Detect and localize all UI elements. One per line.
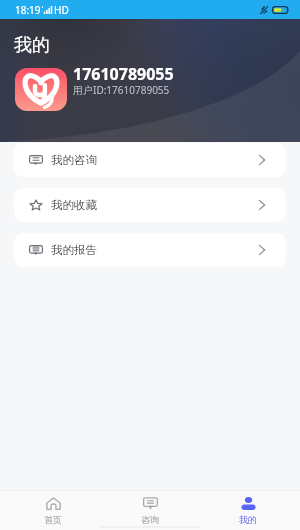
button[interactable]: 我的: [203, 491, 293, 530]
staticText: 17610789055: [73, 63, 174, 85]
button[interactable]: 我的咨询: [14, 143, 286, 177]
staticText: 用户ID:17610789055: [73, 83, 170, 97]
button[interactable]: 首页: [8, 491, 98, 530]
staticText: 我的咨询: [51, 153, 97, 167]
button[interactable]: 我的报告: [14, 233, 286, 267]
staticText: 我的收藏: [51, 198, 97, 212]
button[interactable]: 咨询: [105, 491, 195, 530]
staticText: 我的: [14, 34, 50, 57]
other: Mute: [259, 5, 269, 15]
staticText: 咨询: [141, 514, 159, 525]
other: Battery: [272, 6, 289, 14]
button[interactable]: 我的收藏: [14, 188, 286, 222]
staticText: 我的报告: [51, 243, 97, 257]
staticText: 18:19: [15, 3, 41, 17]
staticText: 我的: [239, 514, 257, 525]
staticText: HD: [54, 3, 69, 17]
staticText: 首页: [44, 514, 62, 525]
